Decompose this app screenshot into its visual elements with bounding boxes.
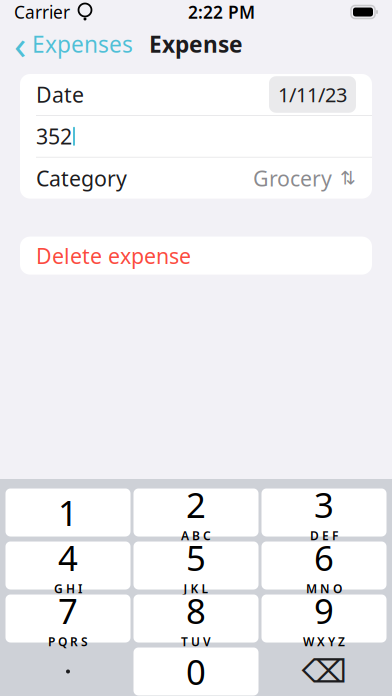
staticText: Date xyxy=(36,80,84,109)
staticText: 7 xyxy=(58,587,78,633)
staticText: 2 xyxy=(186,481,206,527)
button[interactable]: Decimal point xyxy=(5,647,130,695)
button[interactable]: 2 xyxy=(133,488,258,536)
staticText: P Q R S xyxy=(48,634,88,649)
button[interactable]: ‹ xyxy=(0,24,147,64)
button[interactable]: 3 xyxy=(261,488,386,536)
staticText: Carrier xyxy=(14,0,70,23)
button[interactable]: 7 xyxy=(5,594,130,642)
staticText: 9 xyxy=(314,587,334,633)
staticText: 2:22 PM xyxy=(188,0,255,23)
button[interactable]: 8 xyxy=(133,594,258,642)
staticText: M N O xyxy=(306,581,342,596)
staticText: 6 xyxy=(314,534,334,580)
staticText: W X Y Z xyxy=(303,634,345,649)
staticText: 5 xyxy=(186,534,206,580)
staticText: Expense xyxy=(149,29,243,59)
staticText: 0 xyxy=(186,648,206,694)
button[interactable]: 0 xyxy=(133,647,258,695)
button[interactable]: Delete expense xyxy=(20,237,372,275)
button[interactable]: 5 xyxy=(133,541,258,589)
staticText: 3 xyxy=(314,481,334,527)
staticText: 352 xyxy=(36,122,72,150)
button[interactable]: Category xyxy=(20,158,372,199)
button[interactable]: Delete xyxy=(261,647,386,695)
staticText: 4 xyxy=(58,534,78,580)
staticText: T U V xyxy=(181,634,211,649)
button[interactable]: 6 xyxy=(261,541,386,589)
button[interactable]: 9 xyxy=(261,594,386,642)
button[interactable]: 1 xyxy=(5,488,130,536)
staticText: J K L xyxy=(183,581,208,596)
staticText: Delete expense xyxy=(36,241,191,270)
button[interactable]: 1/11/23 xyxy=(269,76,356,113)
staticText: ⇅ xyxy=(340,167,356,189)
staticText: 8 xyxy=(186,587,206,633)
staticText: 1 xyxy=(58,489,78,535)
staticText: 1/11/23 xyxy=(278,81,347,108)
staticText: Grocery xyxy=(253,164,332,192)
staticText: ⌫ xyxy=(301,653,346,690)
button[interactable]: 4 xyxy=(5,541,130,589)
staticText: G H I xyxy=(54,581,82,596)
staticText: Expenses xyxy=(32,29,133,59)
staticText: ‹ xyxy=(14,17,26,70)
staticText: Category xyxy=(36,164,127,192)
staticText: D E F xyxy=(310,528,338,543)
button[interactable]: 352 xyxy=(20,116,372,157)
staticText: A B C xyxy=(181,528,211,543)
